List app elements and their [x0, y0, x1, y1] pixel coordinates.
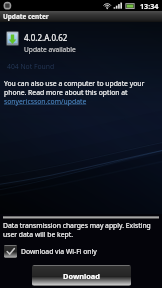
- staticText: Download: [63, 271, 100, 281]
- button[interactable]: Download: [32, 265, 131, 286]
- button[interactable]: Download via Wi-Fi only: [0, 245, 162, 258]
- staticText: Download via Wi-Fi only: [21, 247, 97, 256]
- staticText: Update available: [24, 45, 76, 54]
- staticText: 4.0.2.A.0.62: [24, 32, 68, 43]
- staticText: Data transmission charges may apply. Exi…: [3, 221, 159, 239]
- button[interactable]: sonyericsson.com/update: [4, 97, 87, 106]
- staticText: Update center: [3, 12, 49, 21]
- staticText: 13:34: [140, 1, 159, 11]
- staticText: You can also use a computer to update yo…: [4, 79, 159, 97]
- staticText: 404 Not Found: [7, 62, 55, 71]
